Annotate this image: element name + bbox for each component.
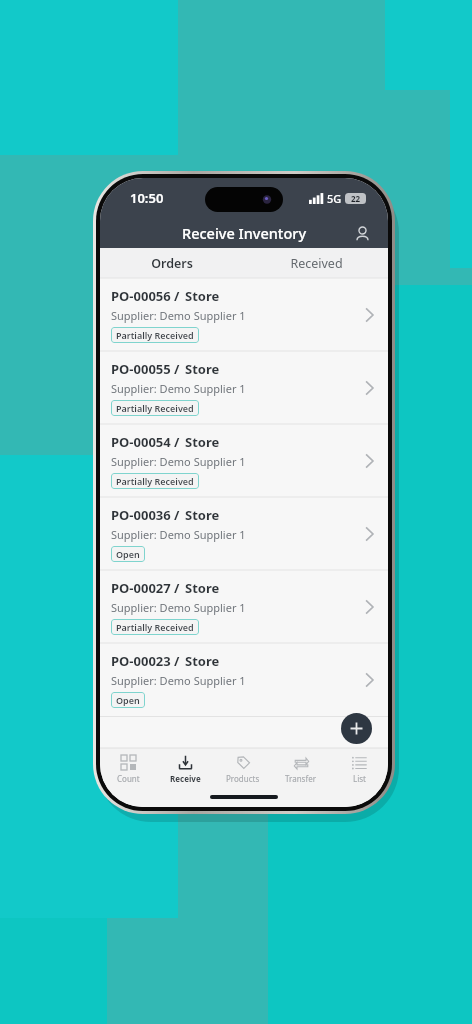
button[interactable]: Orders bbox=[100, 248, 244, 278]
staticText: Partially Received bbox=[116, 475, 194, 487]
button[interactable]: PO-00056 / bbox=[100, 278, 388, 351]
staticText: Partially Received bbox=[116, 329, 194, 341]
staticText: Supplier: Demo Supplier 1 bbox=[111, 454, 246, 469]
staticText: Orders bbox=[151, 255, 193, 272]
staticText: Open bbox=[116, 694, 140, 706]
button[interactable]: Receive bbox=[157, 748, 214, 791]
staticText: Receive bbox=[170, 773, 201, 784]
button[interactable]: List bbox=[330, 748, 388, 791]
button[interactable]: Transfer bbox=[272, 748, 330, 791]
staticText: Partially Received bbox=[116, 402, 194, 414]
staticText: PO-00027 / bbox=[111, 579, 180, 597]
staticText: Store bbox=[185, 506, 220, 524]
staticText: 10:50 bbox=[130, 189, 164, 207]
staticText: PO-00054 / bbox=[111, 433, 180, 451]
staticText: 22 bbox=[351, 193, 361, 204]
staticText: Supplier: Demo Supplier 1 bbox=[111, 381, 246, 396]
staticText: Store bbox=[185, 652, 220, 670]
staticText: Open bbox=[116, 548, 140, 560]
button[interactable]: PO-00027 / bbox=[100, 570, 388, 643]
staticText: Receive Inventory bbox=[182, 223, 307, 243]
staticText: Transfer bbox=[285, 773, 317, 784]
staticText: Store bbox=[185, 579, 220, 597]
staticText: PO-00036 / bbox=[111, 506, 180, 524]
staticText: Partially Received bbox=[116, 621, 194, 633]
button[interactable]: PO-00036 / bbox=[100, 497, 388, 570]
staticText: Store bbox=[185, 433, 220, 451]
staticText: Count bbox=[117, 773, 140, 784]
staticText: Supplier: Demo Supplier 1 bbox=[111, 673, 246, 688]
button[interactable]: PO-00055 / bbox=[100, 351, 388, 424]
staticText: Store bbox=[185, 287, 220, 305]
staticText: Products bbox=[226, 773, 260, 784]
button[interactable]: PO-00023 / bbox=[100, 643, 388, 716]
button[interactable]: Count bbox=[100, 748, 157, 791]
staticText: PO-00055 / bbox=[111, 360, 180, 378]
staticText: Supplier: Demo Supplier 1 bbox=[111, 308, 246, 323]
button[interactable]: Add bbox=[341, 713, 372, 744]
staticText: Received bbox=[290, 255, 343, 272]
staticText: 5G bbox=[327, 191, 342, 206]
button[interactable]: Received bbox=[244, 248, 388, 278]
staticText: Supplier: Demo Supplier 1 bbox=[111, 527, 246, 542]
button[interactable]: PO-00054 / bbox=[100, 424, 388, 497]
staticText: Supplier: Demo Supplier 1 bbox=[111, 600, 246, 615]
staticText: PO-00023 / bbox=[111, 652, 180, 670]
staticText: List bbox=[353, 773, 366, 784]
button[interactable]: Account bbox=[348, 219, 376, 247]
staticText: Store bbox=[185, 360, 220, 378]
staticText: PO-00056 / bbox=[111, 287, 180, 305]
button[interactable]: Products bbox=[214, 748, 272, 791]
